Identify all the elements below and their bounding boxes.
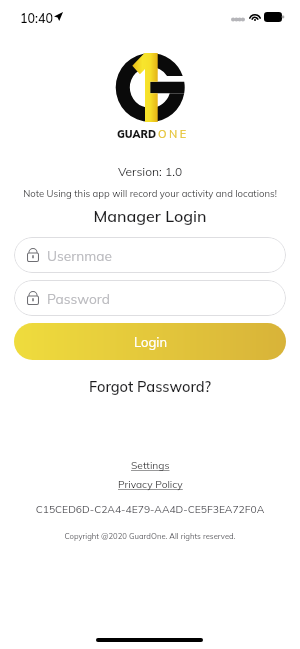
staticText: Manager Login [0, 206, 300, 226]
button[interactable]: Usernmae [14, 237, 286, 273]
button[interactable]: Forgot Password? [83, 374, 218, 398]
button[interactable]: Login [14, 323, 286, 360]
other: Wi-Fi [249, 11, 261, 21]
button[interactable]: Password [14, 280, 286, 316]
button[interactable]: Settings [127, 457, 174, 474]
staticText: Password [47, 290, 110, 307]
staticText: Copyright @2020 GuardOne. All rights res… [0, 531, 300, 541]
staticText: Note Using this app will record your act… [0, 187, 300, 199]
staticText: Version: 1.0 [0, 164, 300, 179]
other: Battery full [264, 12, 284, 22]
staticText: GUARD [117, 128, 157, 141]
staticText: 10:40 [20, 10, 53, 26]
staticText: Usernmae [47, 247, 112, 264]
button[interactable]: Privacy Policy [114, 476, 187, 493]
staticText: Login [134, 334, 167, 350]
staticText: ONE [158, 127, 189, 141]
staticText: C15CED6D-C2A4-4E79-AA4D-CE5F3EA72F0A [0, 503, 300, 516]
other: Location active [54, 12, 63, 21]
